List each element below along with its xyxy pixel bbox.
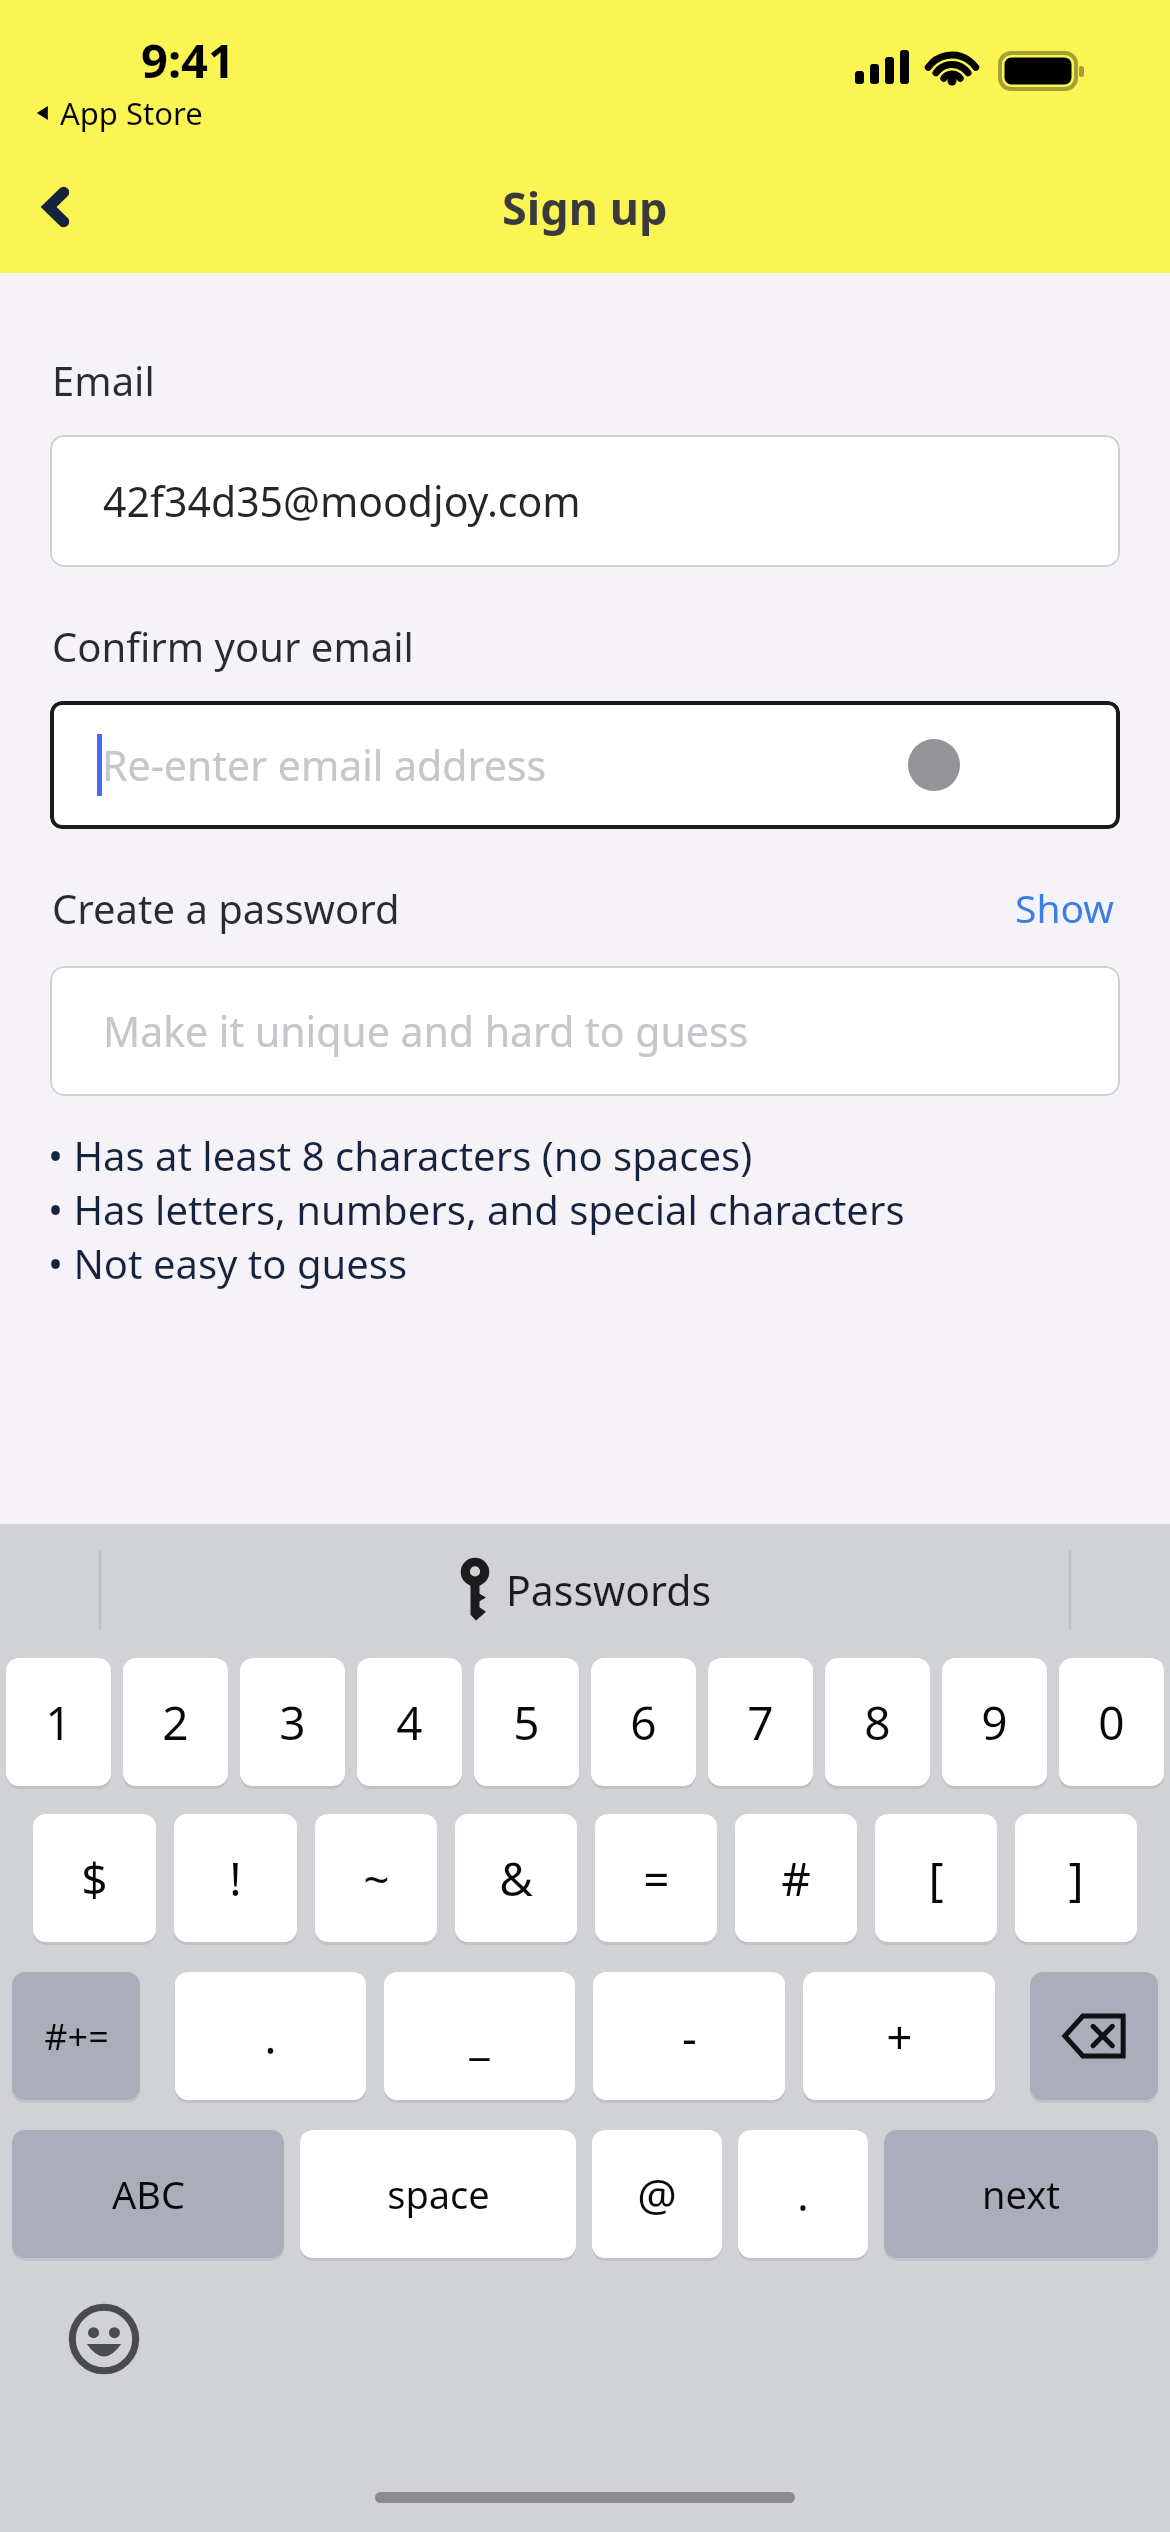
staticText: Show	[1015, 881, 1114, 934]
staticText: • Has at least 8 characters (no spaces)	[48, 1128, 753, 1182]
button[interactable]: Passwords	[458, 1559, 712, 1621]
staticText: 4	[396, 1691, 423, 1754]
staticText: !	[229, 1847, 242, 1910]
button[interactable]: !	[174, 1814, 297, 1942]
staticText: ~	[363, 1847, 390, 1910]
staticText: 42f34d35@moodjoy.com	[103, 473, 581, 529]
button[interactable]: =	[595, 1814, 717, 1942]
staticText: ]	[1068, 1847, 1084, 1910]
staticText: 6	[630, 1691, 657, 1754]
button[interactable]: 7	[708, 1658, 813, 1786]
staticText: @	[637, 2164, 677, 2224]
staticText: next	[982, 2168, 1060, 2220]
button[interactable]: App Store	[30, 88, 205, 138]
staticText: space	[387, 2168, 490, 2220]
staticText: 0	[1098, 1691, 1125, 1754]
staticText: .	[797, 2164, 809, 2224]
staticText: .	[264, 2005, 277, 2068]
staticText: Create a password	[52, 881, 400, 935]
staticText: • Has letters, numbers, and special char…	[48, 1182, 905, 1236]
staticText: 5	[513, 1691, 540, 1754]
button[interactable]: 2	[123, 1658, 228, 1786]
staticText: 7	[747, 1691, 774, 1754]
button[interactable]: Backspace	[1030, 1972, 1158, 2100]
button[interactable]: ABC	[12, 2130, 284, 2258]
button[interactable]: &	[455, 1814, 577, 1942]
button[interactable]: +	[803, 1972, 995, 2100]
staticText: 2	[162, 1691, 189, 1754]
button[interactable]: 9	[942, 1658, 1047, 1786]
staticText: $	[81, 1847, 108, 1910]
button[interactable]: Make it unique and hard to guess	[50, 966, 1120, 1096]
button[interactable]: [	[875, 1814, 997, 1942]
staticText: #	[781, 1847, 811, 1910]
button[interactable]: 42f34d35@moodjoy.com	[50, 435, 1120, 567]
staticText: Confirm your email	[52, 619, 414, 673]
button[interactable]: next	[884, 2130, 1158, 2258]
button[interactable]: 3	[240, 1658, 345, 1786]
staticText: _	[469, 2005, 490, 2068]
button[interactable]: @	[592, 2130, 722, 2258]
staticText: 9	[981, 1691, 1008, 1754]
button[interactable]: 0	[1059, 1658, 1164, 1786]
staticText: Email	[52, 353, 155, 407]
staticText: • Not easy to guess	[48, 1236, 408, 1290]
button[interactable]: _	[384, 1972, 575, 2100]
button[interactable]: Re-enter email address	[50, 701, 1120, 829]
button[interactable]: .	[175, 1972, 366, 2100]
button[interactable]: 8	[825, 1658, 930, 1786]
button[interactable]: 5	[474, 1658, 579, 1786]
staticText: +	[886, 2005, 913, 2068]
staticText: Passwords	[506, 1562, 712, 1618]
staticText: 1	[45, 1691, 72, 1754]
button[interactable]: 1	[6, 1658, 111, 1786]
staticText: Make it unique and hard to guess	[103, 1003, 749, 1059]
button[interactable]: -	[593, 1972, 785, 2100]
button[interactable]: Clear text	[908, 739, 960, 791]
button[interactable]: .	[738, 2130, 868, 2258]
button[interactable]: #+=	[12, 1972, 140, 2100]
button[interactable]: $	[33, 1814, 156, 1942]
button[interactable]: Back	[14, 164, 100, 250]
staticText: 8	[864, 1691, 891, 1754]
button[interactable]: Show	[1011, 877, 1118, 938]
button[interactable]: 4	[357, 1658, 462, 1786]
staticText: [	[928, 1847, 944, 1910]
staticText: -	[682, 2005, 697, 2068]
button[interactable]: space	[300, 2130, 576, 2258]
button[interactable]: Emoji keyboard	[62, 2297, 146, 2381]
staticText: &	[499, 1847, 533, 1910]
button[interactable]: ~	[315, 1814, 437, 1942]
button[interactable]: ]	[1015, 1814, 1137, 1942]
button[interactable]: #	[735, 1814, 857, 1942]
staticText: =	[643, 1847, 670, 1910]
button[interactable]: 6	[591, 1658, 696, 1786]
staticText: 9:41	[141, 28, 235, 92]
staticText: App Store	[60, 92, 203, 134]
staticText: ABC	[112, 2168, 185, 2220]
staticText: Re-enter email address	[102, 737, 547, 793]
staticText: Sign up	[502, 177, 668, 238]
staticText: #+=	[44, 2012, 109, 2061]
staticText: 3	[279, 1691, 306, 1754]
